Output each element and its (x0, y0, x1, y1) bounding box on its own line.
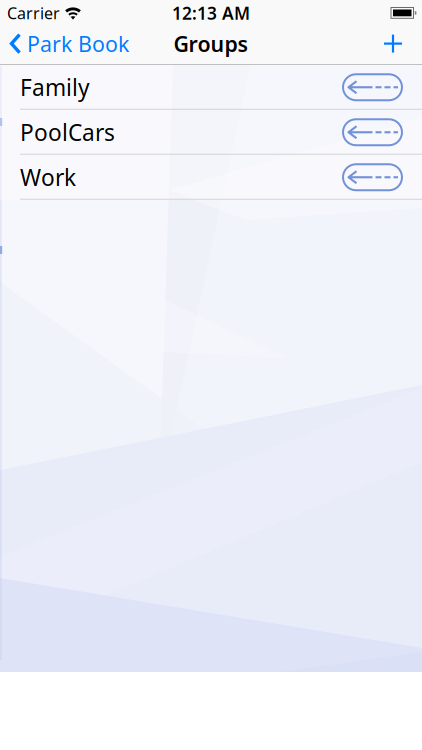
button[interactable]: PoolCars (0, 110, 422, 155)
button[interactable]: Family (0, 65, 422, 110)
staticText: Groups (173, 29, 248, 58)
staticText: Family (20, 72, 90, 102)
button[interactable]: Work (0, 155, 422, 200)
staticText: Work (20, 162, 76, 192)
staticText: Park Book (27, 29, 129, 58)
button[interactable]: Add Group (384, 35, 422, 53)
staticText: PoolCars (20, 117, 115, 147)
staticText: Carrier (7, 2, 60, 24)
button[interactable]: Park Book (0, 29, 129, 58)
staticText: 12:13 AM (172, 1, 250, 24)
